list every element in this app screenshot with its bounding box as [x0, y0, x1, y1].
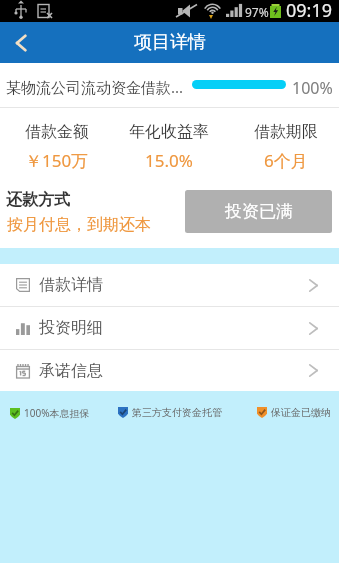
button[interactable]: 承诺信息: [0, 350, 339, 391]
staticText: 某物流公司流动资金借款...: [6, 77, 184, 97]
button[interactable]: 投资已满: [185, 190, 332, 233]
staticText: 年化收益率: [129, 122, 209, 142]
staticText: ￥150万: [25, 149, 89, 172]
staticText: 按月付息，到期还本: [7, 215, 151, 235]
button[interactable]: 投资明细: [0, 307, 339, 349]
staticText: 保证金已缴纳: [271, 406, 331, 419]
staticText: 第三方支付资金托管: [132, 406, 222, 419]
staticText: 100%: [292, 77, 333, 99]
button[interactable]: Back: [0, 22, 42, 63]
staticText: 还款方式: [6, 190, 70, 210]
staticText: 借款金额: [25, 122, 89, 142]
staticText: 承诺信息: [39, 361, 103, 381]
staticText: 投资明细: [39, 318, 103, 338]
staticText: 投资已满: [225, 201, 293, 222]
staticText: 15.0%: [145, 149, 193, 172]
staticText: 6个月: [264, 149, 308, 172]
staticText: 09:19: [286, 0, 333, 20]
button[interactable]: 借款详情: [0, 264, 339, 306]
staticText: 100%本息担保: [24, 406, 90, 420]
staticText: 97%: [245, 4, 269, 20]
staticText: 借款详情: [39, 275, 103, 295]
staticText: 借款期限: [254, 122, 318, 142]
staticText: 项目详情: [134, 31, 206, 54]
